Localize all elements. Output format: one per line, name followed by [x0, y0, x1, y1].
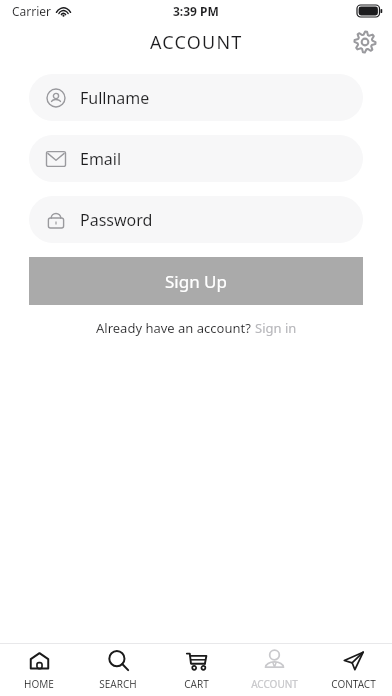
button[interactable]: Fullname — [29, 74, 363, 121]
staticText: Carrier — [12, 3, 52, 19]
staticText: 3:39 PM — [173, 3, 219, 19]
staticText: Already have an account? — [96, 319, 255, 337]
button[interactable]: CONTACT — [314, 644, 392, 696]
button[interactable]: Settings — [348, 25, 382, 59]
staticText: Sign Up — [165, 270, 227, 293]
staticText: Fullname — [80, 87, 150, 109]
staticText: ACCOUNT — [251, 677, 298, 691]
button[interactable]: Email — [29, 135, 363, 182]
button[interactable]: Sign Up — [29, 257, 363, 305]
staticText: CART — [184, 677, 209, 691]
button[interactable]: CART — [157, 644, 235, 696]
button[interactable]: SEARCH — [79, 644, 157, 696]
staticText: HOME — [24, 677, 54, 691]
button[interactable]: Sign in — [255, 319, 297, 337]
staticText: Sign in — [255, 319, 297, 337]
staticText: Password — [80, 209, 153, 231]
staticText: SEARCH — [99, 677, 137, 691]
staticText: ACCOUNT — [150, 30, 243, 55]
staticText: Email — [80, 148, 122, 170]
button[interactable]: HOME — [0, 644, 78, 696]
button[interactable]: ACCOUNT — [235, 644, 313, 696]
button[interactable]: Password — [29, 196, 363, 243]
staticText: CONTACT — [331, 677, 376, 691]
